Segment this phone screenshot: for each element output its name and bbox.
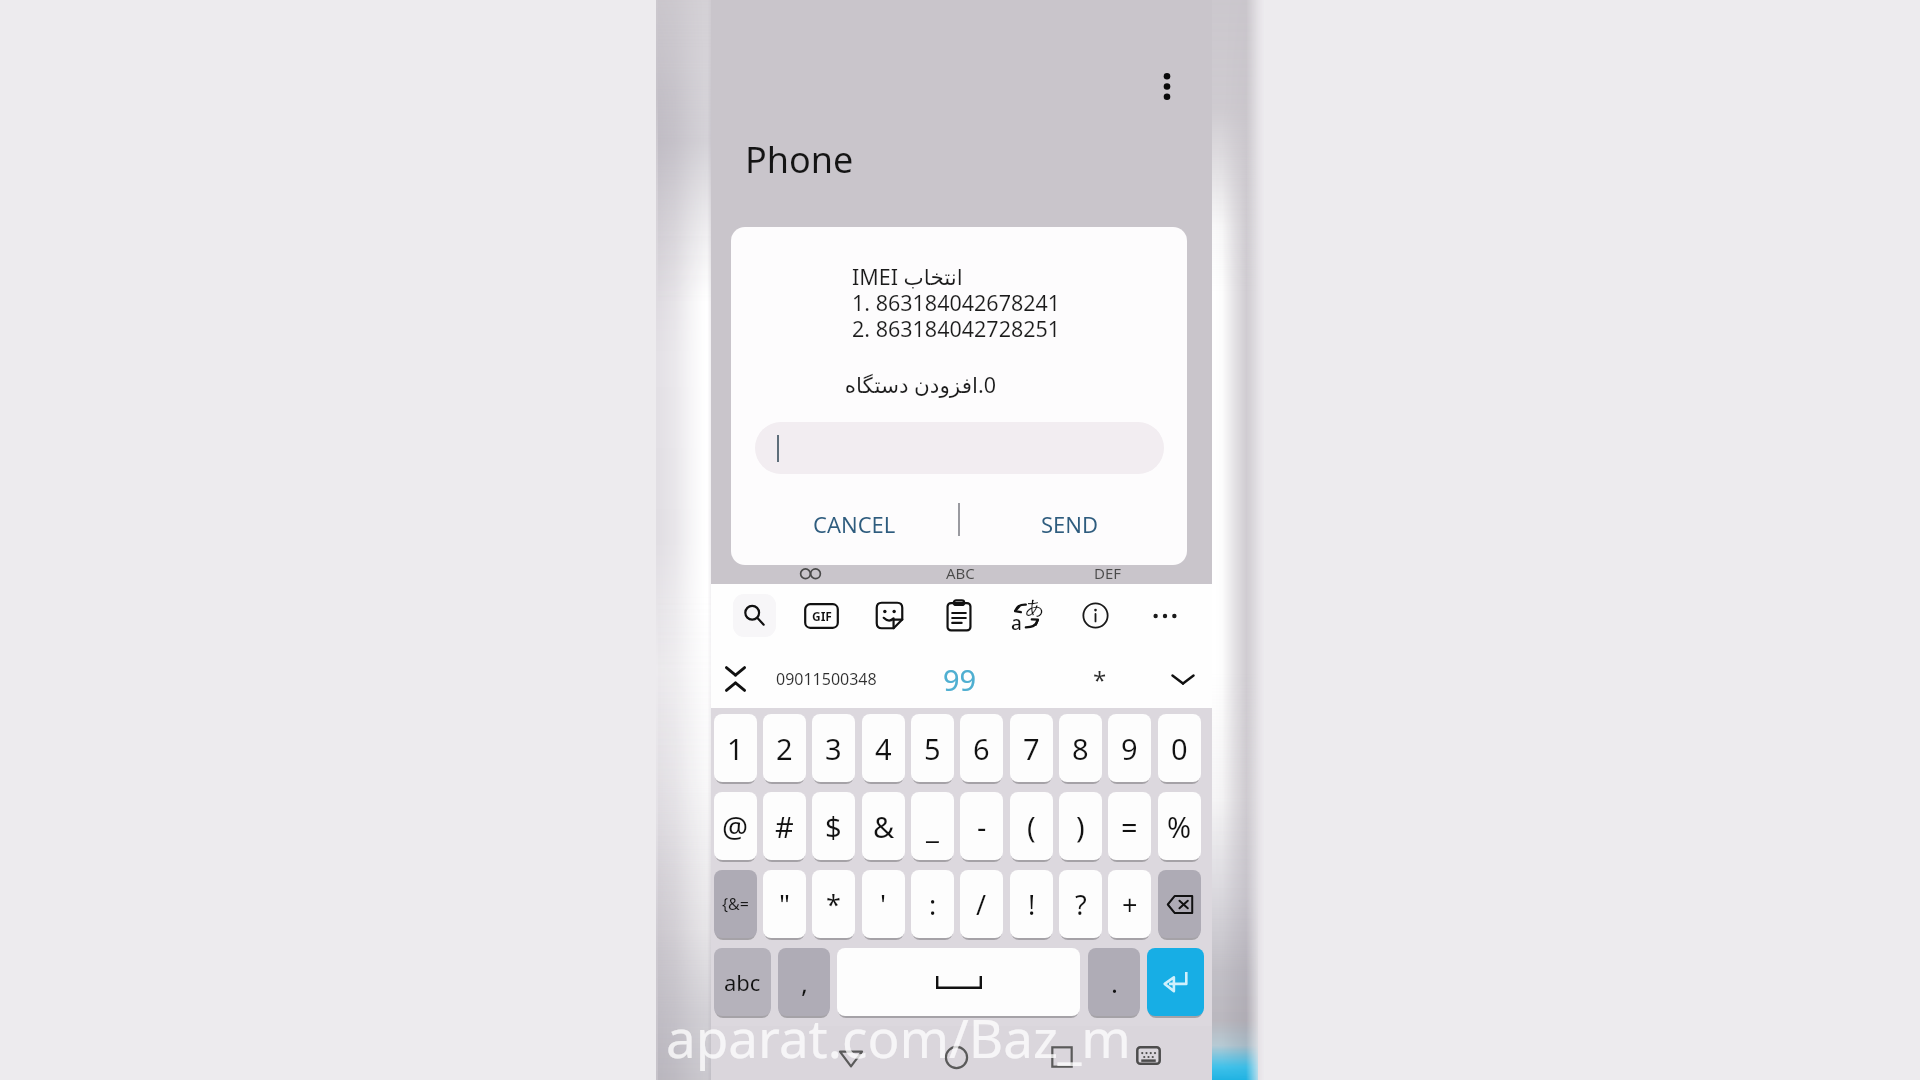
staticText: 7 <box>1023 729 1040 768</box>
staticText: a <box>1011 610 1022 636</box>
button[interactable]: 8 <box>1059 714 1102 782</box>
staticText: = <box>1121 807 1138 846</box>
button[interactable]: ! <box>1010 870 1053 938</box>
staticText: 5 <box>924 729 941 768</box>
button[interactable]: Search <box>733 594 776 637</box>
staticText: ABC <box>946 563 975 583</box>
staticText: 09011500348 <box>776 668 877 690</box>
staticText: # <box>775 807 794 846</box>
button[interactable]: ) <box>1059 792 1102 860</box>
staticText: ? <box>1075 886 1087 923</box>
button[interactable]: 3 <box>812 714 855 782</box>
button[interactable]: Recents <box>1038 1033 1086 1080</box>
staticText: ( <box>1027 807 1036 846</box>
staticText: Phone <box>745 135 854 184</box>
staticText: 1 <box>727 729 744 768</box>
button[interactable]: 1 <box>714 714 757 782</box>
button[interactable]: Clipboard <box>937 594 980 637</box>
button[interactable]: 09011500348 <box>751 650 901 708</box>
staticText: IMEI انتخاب <box>852 262 963 291</box>
staticText: % <box>1167 807 1192 846</box>
button[interactable]: Home <box>932 1033 980 1080</box>
staticText: / <box>976 886 987 923</box>
staticText: _ <box>926 807 939 846</box>
staticText: 8 <box>1072 729 1089 768</box>
button[interactable]: # <box>763 792 806 860</box>
button[interactable]: % <box>1158 792 1201 860</box>
staticText: DEF <box>1094 563 1122 583</box>
staticText: abc <box>724 967 761 997</box>
button[interactable]: {&= <box>714 870 757 938</box>
button[interactable]: + <box>1108 870 1151 938</box>
staticText: & <box>873 807 895 846</box>
staticText: 9 <box>1121 729 1138 768</box>
staticText: . <box>1111 965 1118 1000</box>
button[interactable]: * <box>1070 650 1130 708</box>
button[interactable]: 99 <box>920 650 1000 708</box>
button[interactable]: Collapse suggestions <box>713 657 757 701</box>
button[interactable] <box>755 422 1164 474</box>
staticText: ) <box>1076 807 1085 846</box>
button[interactable]: @ <box>714 792 757 860</box>
button[interactable]: 4 <box>862 714 905 782</box>
button[interactable]: ' <box>862 870 905 938</box>
button[interactable]: More options <box>1143 62 1191 110</box>
staticText: 2. 863184042728251 <box>852 314 1061 343</box>
staticText: あ <box>1025 596 1045 620</box>
staticText: * <box>1093 663 1107 696</box>
button[interactable]: & <box>862 792 905 860</box>
button[interactable]: ( <box>1010 792 1053 860</box>
button[interactable]: Back <box>827 1033 875 1080</box>
button[interactable]: 0 <box>1158 714 1201 782</box>
staticText: @ <box>722 807 749 846</box>
button[interactable]: 5 <box>911 714 954 782</box>
button[interactable]: " <box>763 870 806 938</box>
staticText: " <box>779 886 791 923</box>
button[interactable]: : <box>911 870 954 938</box>
staticText: 1. 863184042678241 <box>852 288 1061 317</box>
button[interactable]: SEND <box>960 487 1180 560</box>
staticText: 3 <box>825 729 842 768</box>
staticText: , <box>801 965 808 1000</box>
staticText: GIF <box>812 608 832 624</box>
button[interactable]: ? <box>1059 870 1102 938</box>
staticText: 4 <box>875 729 892 768</box>
staticText: {&= <box>722 893 749 915</box>
staticText: aparat.com/Baz_m <box>666 1001 1131 1073</box>
button[interactable]: GIF <box>800 594 843 637</box>
button[interactable]: 9 <box>1108 714 1151 782</box>
button[interactable]: CANCEL <box>749 487 959 560</box>
button[interactable]: = <box>1108 792 1151 860</box>
staticText: ! <box>1028 886 1036 923</box>
button[interactable]: $ <box>812 792 855 860</box>
button[interactable]: , <box>778 948 830 1016</box>
staticText: - <box>977 807 987 846</box>
staticText: * <box>826 886 841 923</box>
button[interactable]: More <box>1143 594 1186 637</box>
staticText: 0 <box>1171 729 1188 768</box>
button[interactable]: _ <box>911 792 954 860</box>
button[interactable]: * <box>812 870 855 938</box>
button[interactable]: 7 <box>1010 714 1053 782</box>
staticText: 2 <box>776 729 793 768</box>
button[interactable]: / <box>960 870 1003 938</box>
button[interactable]: Space <box>837 948 1080 1016</box>
staticText: 0.افزودن دستگاه <box>844 370 996 399</box>
staticText: ' <box>880 886 887 923</box>
button[interactable]: . <box>1088 948 1140 1016</box>
button[interactable]: 6 <box>960 714 1003 782</box>
staticText: $ <box>825 807 842 846</box>
button[interactable]: Info <box>1074 594 1117 637</box>
staticText: 99 <box>943 660 977 699</box>
staticText: CANCEL <box>813 509 896 539</box>
staticText: SEND <box>1041 509 1099 539</box>
button[interactable]: Hide keyboard <box>1124 1035 1172 1075</box>
button[interactable]: Expand suggestions <box>1163 659 1203 699</box>
button[interactable]: Translate <box>1005 594 1048 637</box>
button[interactable]: 2 <box>763 714 806 782</box>
button[interactable]: - <box>960 792 1003 860</box>
button[interactable]: Backspace <box>1158 870 1201 938</box>
button[interactable]: Stickers <box>868 594 911 637</box>
button[interactable]: Enter <box>1147 948 1204 1016</box>
button[interactable]: abc <box>714 948 771 1016</box>
